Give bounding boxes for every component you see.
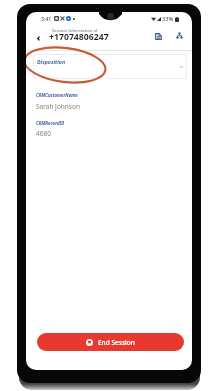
staticText: 4680 [36, 129, 51, 138]
staticText: End Session [98, 338, 135, 347]
staticText: 33% [162, 15, 174, 23]
staticText: Session Information of [52, 28, 98, 34]
staticText: +17074806247 [49, 31, 109, 43]
button[interactable]: Notes [151, 29, 165, 43]
button[interactable]: End Session [37, 333, 184, 351]
button[interactable]: Hierarchy [172, 28, 186, 42]
button[interactable]: Back [30, 30, 46, 46]
staticText: Sarah Johnson [36, 102, 80, 111]
staticText: CRMCustomerName [36, 92, 78, 98]
staticText: 3:41 [41, 15, 52, 22]
button[interactable]: Disposition [33, 54, 187, 79]
staticText: Disposition [37, 58, 66, 65]
staticText: CRMRecordID [36, 120, 65, 126]
